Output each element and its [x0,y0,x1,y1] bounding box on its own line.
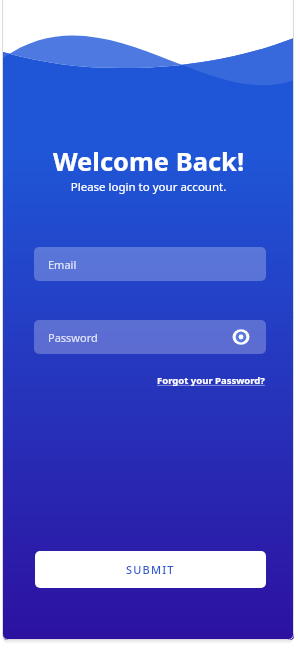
staticText: Password [48,330,98,345]
staticText: Welcome Back! [3,144,294,179]
button[interactable]: Email [34,247,266,281]
button[interactable]: Forgot your Password? [157,374,265,387]
staticText: SUBMIT [126,562,175,577]
button[interactable]: SUBMIT [35,551,266,588]
staticText: Please login to your account. [3,179,294,195]
staticText: Forgot your Password? [157,374,265,387]
staticText: Email [48,257,77,272]
button[interactable]: Password [34,320,266,354]
